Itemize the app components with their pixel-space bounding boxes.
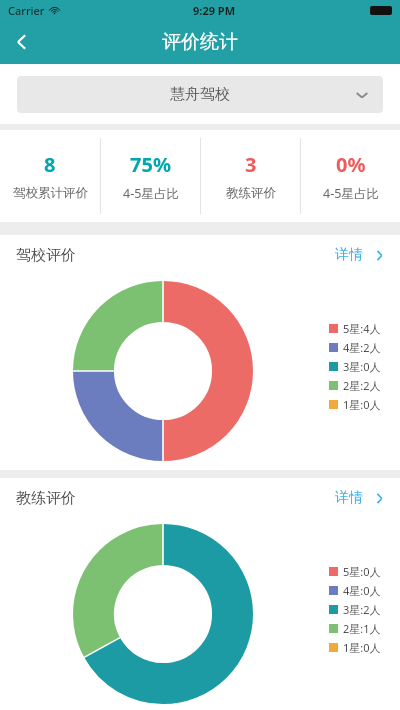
staticText: 2星:1人: [343, 621, 381, 636]
staticText: 4星:2人: [343, 340, 381, 355]
staticText: Carrier: [8, 3, 45, 18]
staticText: 9:29 PM: [193, 3, 236, 18]
staticText: 5星:0人: [343, 564, 381, 579]
staticText: 3星:2人: [343, 602, 381, 617]
staticText: 慧舟驾校: [170, 85, 230, 104]
staticText: 5星:4人: [343, 321, 381, 336]
button[interactable]: 8: [0, 130, 100, 222]
staticText: 教练评价: [226, 185, 276, 201]
staticText: 驾校累计评价: [13, 185, 88, 201]
staticText: 教练评价: [16, 489, 76, 508]
staticText: 1星:0人: [343, 640, 381, 655]
staticText: 详情: [335, 489, 363, 507]
button[interactable]: Back: [0, 20, 44, 64]
button[interactable]: 0%: [301, 130, 400, 222]
staticText: 4星:0人: [343, 583, 381, 598]
button[interactable]: 75%: [101, 130, 200, 222]
staticText: 2星:2人: [343, 378, 381, 393]
staticText: 驾校评价: [16, 246, 76, 265]
staticText: 1星:0人: [343, 397, 381, 412]
staticText: 3星:0人: [343, 359, 381, 374]
staticText: 75%: [130, 151, 171, 178]
staticText: 3: [245, 151, 257, 178]
staticText: 4-5星占比: [323, 185, 379, 202]
staticText: 0%: [336, 151, 366, 178]
button[interactable]: 详情: [335, 246, 386, 264]
button[interactable]: 慧舟驾校: [17, 76, 383, 113]
staticText: 详情: [335, 246, 363, 264]
button[interactable]: 3: [201, 130, 300, 222]
staticText: 8: [44, 151, 56, 178]
staticText: 评价统计: [162, 30, 238, 54]
button[interactable]: 详情: [335, 489, 386, 507]
staticText: 4-5星占比: [123, 185, 179, 202]
